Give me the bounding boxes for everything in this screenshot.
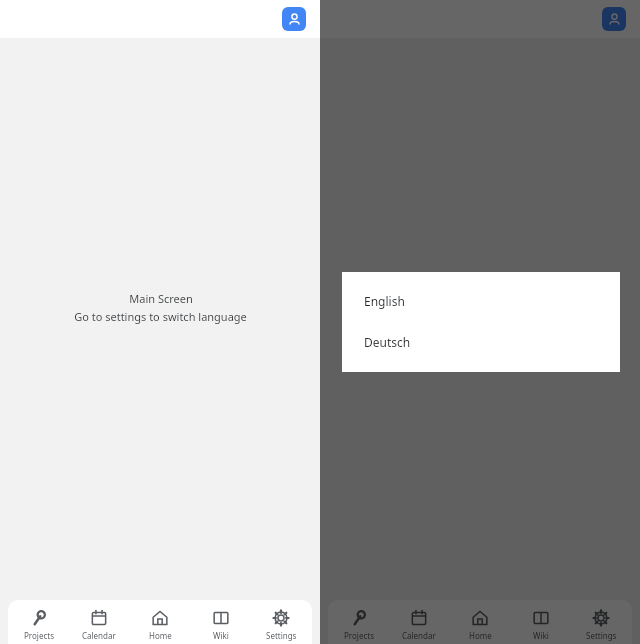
button[interactable]: Calendar: [389, 600, 449, 644]
staticText: Main Screen: [129, 291, 193, 306]
button[interactable]: Home: [450, 600, 510, 644]
staticText: English: [364, 293, 405, 309]
staticText: Settings: [266, 630, 297, 641]
button[interactable]: Projects: [329, 600, 389, 644]
button[interactable]: Projects: [9, 600, 69, 644]
staticText: Calendar: [82, 630, 116, 641]
button[interactable]: Wiki: [191, 600, 251, 644]
button[interactable]: Calendar: [69, 600, 129, 644]
button[interactable]: Home: [130, 600, 190, 644]
button[interactable]: Deutsch: [342, 331, 620, 352]
button[interactable]: Settings: [571, 600, 631, 644]
staticText: Projects: [24, 630, 54, 641]
button[interactable]: Account: [602, 7, 626, 31]
button[interactable]: Wiki: [511, 600, 571, 644]
staticText: Deutsch: [364, 334, 411, 350]
button[interactable]: Settings: [251, 600, 311, 644]
staticText: Projects: [344, 630, 374, 641]
button[interactable]: English: [342, 290, 620, 311]
staticText: Settings: [586, 630, 617, 641]
staticText: Home: [149, 630, 172, 641]
staticText: Go to settings to switch language: [74, 309, 247, 324]
staticText: Home: [469, 630, 492, 641]
button[interactable]: Account: [282, 7, 306, 31]
staticText: Wiki: [533, 630, 549, 641]
staticText: Wiki: [213, 630, 229, 641]
staticText: Calendar: [402, 630, 436, 641]
